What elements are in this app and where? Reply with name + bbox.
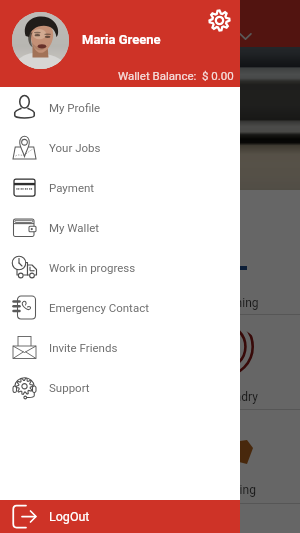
staticText: Cooking [212,483,256,497]
staticText: Emergency Contact [49,301,149,314]
button[interactable]: Work in progress [0,247,240,287]
staticText: Laundry [215,390,258,404]
staticText: LogOut [49,509,90,524]
button[interactable]: Emergency Contact [0,287,240,327]
staticText: Wallet Balance: $ 0.00 [118,69,234,82]
staticText: Work in progress [49,261,136,274]
button[interactable]: My Profile [0,87,240,127]
button[interactable]: Support [0,367,240,407]
button[interactable]: Payment [0,167,240,207]
button[interactable]: LogOut [0,500,240,533]
button[interactable]: Invite Friends [0,327,240,367]
staticText: My Profile [49,101,101,114]
button[interactable]: Your Jobs [0,127,240,167]
staticText: Maria Greene [82,32,161,47]
staticText: Payment [49,181,95,194]
staticText: My Wallet [49,221,100,234]
button[interactable]: Settings [206,7,233,34]
staticText: Cleaning [212,296,259,310]
staticText: Your Jobs [49,141,101,154]
staticText: Invite Friends [49,341,118,354]
staticText: Support [49,381,90,394]
button[interactable]: My Wallet [0,207,240,247]
